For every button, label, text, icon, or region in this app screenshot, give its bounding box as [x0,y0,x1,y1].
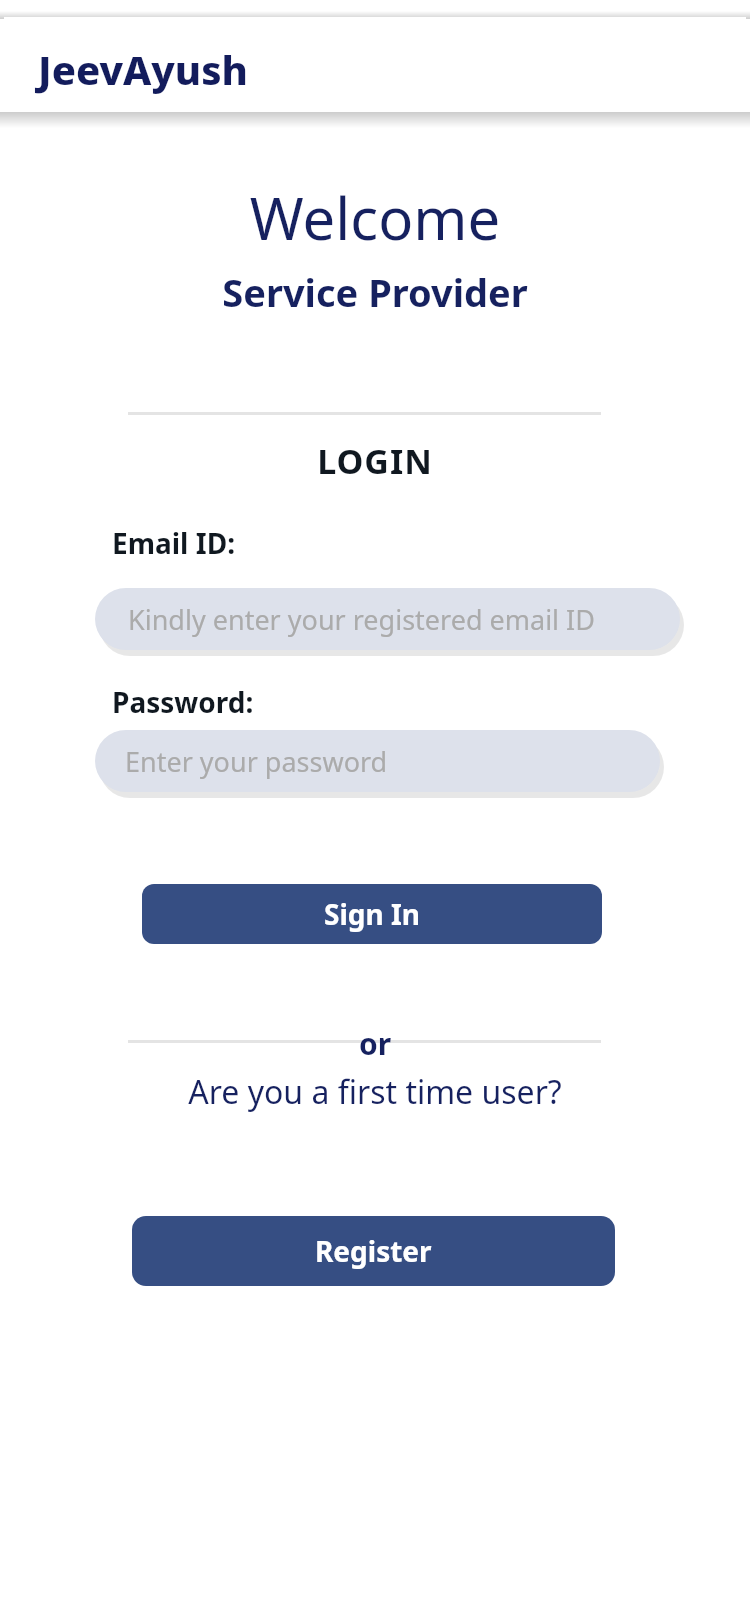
staticText: Password: [112,683,512,724]
staticText: or [0,1023,750,1067]
button[interactable]: Register [132,1216,615,1286]
staticText: Sign In [324,895,421,933]
staticText: Are you a first time user? [0,1070,750,1116]
staticText: Enter your password [125,743,388,780]
staticText: Welcome [0,178,750,262]
staticText: Kindly enter your registered email ID [128,601,595,638]
staticText: LOGIN [0,438,750,487]
button[interactable]: Sign In [142,884,602,944]
staticText: JeevAyush [38,42,498,100]
staticText: Service Provider [0,266,750,321]
staticText: Email ID: [112,524,512,565]
button[interactable]: Email ID input [95,588,680,650]
staticText: Register [315,1232,432,1270]
button[interactable]: Password input [95,730,660,792]
